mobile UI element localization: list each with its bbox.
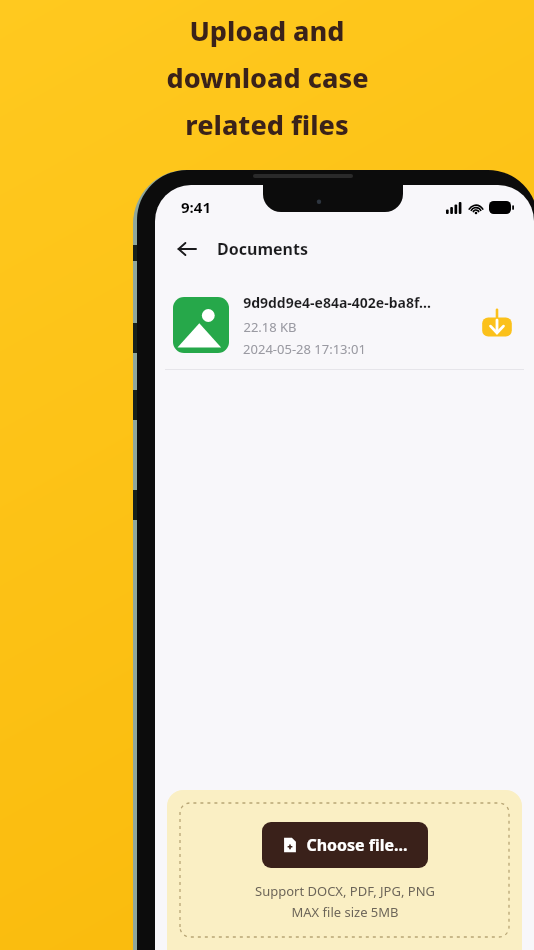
staticText: 9:41 bbox=[181, 197, 211, 217]
staticText: Upload and bbox=[189, 12, 345, 49]
staticText: 9d9dd9e4-e84a-402e-ba8f... bbox=[243, 293, 431, 312]
staticText: 22.18 KB bbox=[243, 318, 297, 336]
staticText: MAX file size 5MB bbox=[291, 903, 399, 921]
staticText: 2024-05-28 17:13:01 bbox=[243, 340, 366, 358]
staticText: Choose file... bbox=[306, 834, 408, 856]
button[interactable]: 9d9dd9e4-e84a-402e-ba8f... bbox=[155, 281, 534, 369]
staticText: Support DOCX, PDF, JPG, PNG bbox=[255, 882, 435, 900]
button[interactable]: Back bbox=[169, 231, 205, 267]
staticText: Documents bbox=[217, 238, 308, 260]
button[interactable]: Choose file... bbox=[262, 822, 428, 868]
staticText: related files bbox=[185, 106, 349, 143]
button[interactable]: Download bbox=[476, 304, 518, 346]
staticText: download case bbox=[166, 59, 369, 96]
